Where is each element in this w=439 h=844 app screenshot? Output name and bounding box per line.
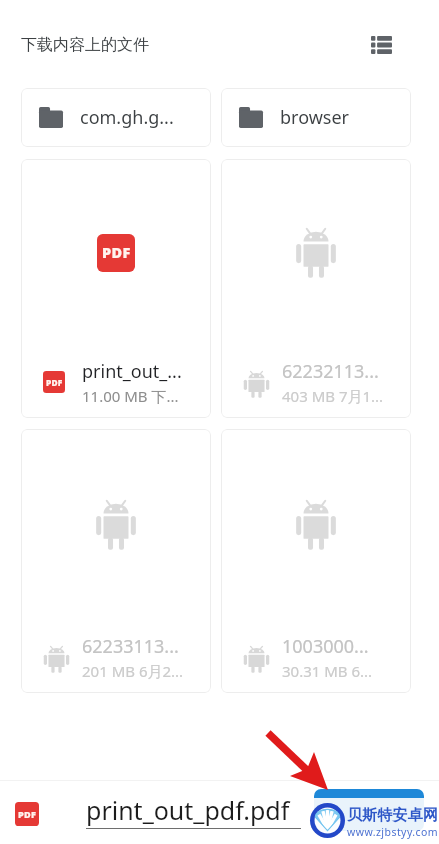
staticText: 62233113... (82, 634, 179, 659)
button[interactable]: 62233113... (21, 429, 211, 693)
staticText: PDF (46, 377, 63, 388)
staticText: www.zjbstyy.com (347, 825, 439, 839)
staticText: print_out_pdf.pdf (86, 793, 290, 827)
button[interactable]: Save (314, 789, 424, 831)
staticText: PDF (18, 808, 37, 820)
staticText: com.gh.g... (80, 105, 174, 130)
button[interactable]: browser (221, 88, 411, 147)
staticText: browser (280, 105, 350, 130)
button[interactable]: com.gh.g... (21, 88, 211, 147)
staticText: 403 MB 7月1... (282, 386, 384, 406)
staticText: 11.00 MB 下... (82, 386, 179, 406)
button[interactable]: 1003000... (221, 429, 411, 693)
staticText: 201 MB 6月2... (82, 661, 184, 681)
staticText: 30.31 MB 6... (282, 661, 373, 681)
staticText: 1003000... (282, 634, 369, 659)
button[interactable]: 62232113... (221, 159, 411, 418)
staticText: print_out_... (82, 359, 182, 384)
staticText: 下载内容上的文件 (21, 35, 149, 55)
button[interactable]: print_out_pdf.pdf (86, 793, 301, 829)
staticText: PDF (102, 243, 131, 263)
staticText: 62232113... (282, 359, 379, 384)
staticText: 贝斯特安卓网 (347, 806, 439, 825)
button[interactable]: PDF (21, 159, 211, 418)
button[interactable]: List view (357, 21, 405, 69)
